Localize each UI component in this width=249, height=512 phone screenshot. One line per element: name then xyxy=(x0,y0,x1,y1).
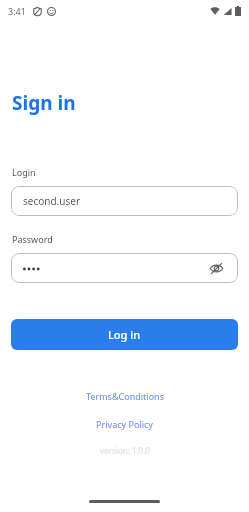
staticText: version: 1.0.0 xyxy=(100,445,150,456)
staticText: Log in xyxy=(108,327,141,342)
button[interactable]: Log in xyxy=(11,319,238,350)
staticText: 3:41 xyxy=(8,5,26,17)
staticText: Sign in xyxy=(12,90,76,116)
staticText: Login xyxy=(12,166,36,178)
button[interactable]: Show password xyxy=(11,253,238,283)
staticText: Password xyxy=(12,233,53,245)
button[interactable]: Terms&Conditions xyxy=(78,388,172,404)
button[interactable]: Show password xyxy=(206,258,226,278)
staticText: Privacy Policy xyxy=(96,418,153,430)
staticText: Terms&Conditions xyxy=(86,390,164,402)
staticText: second.user xyxy=(23,194,81,208)
button[interactable]: second.user xyxy=(11,186,238,216)
button[interactable]: Privacy Policy xyxy=(88,416,161,432)
